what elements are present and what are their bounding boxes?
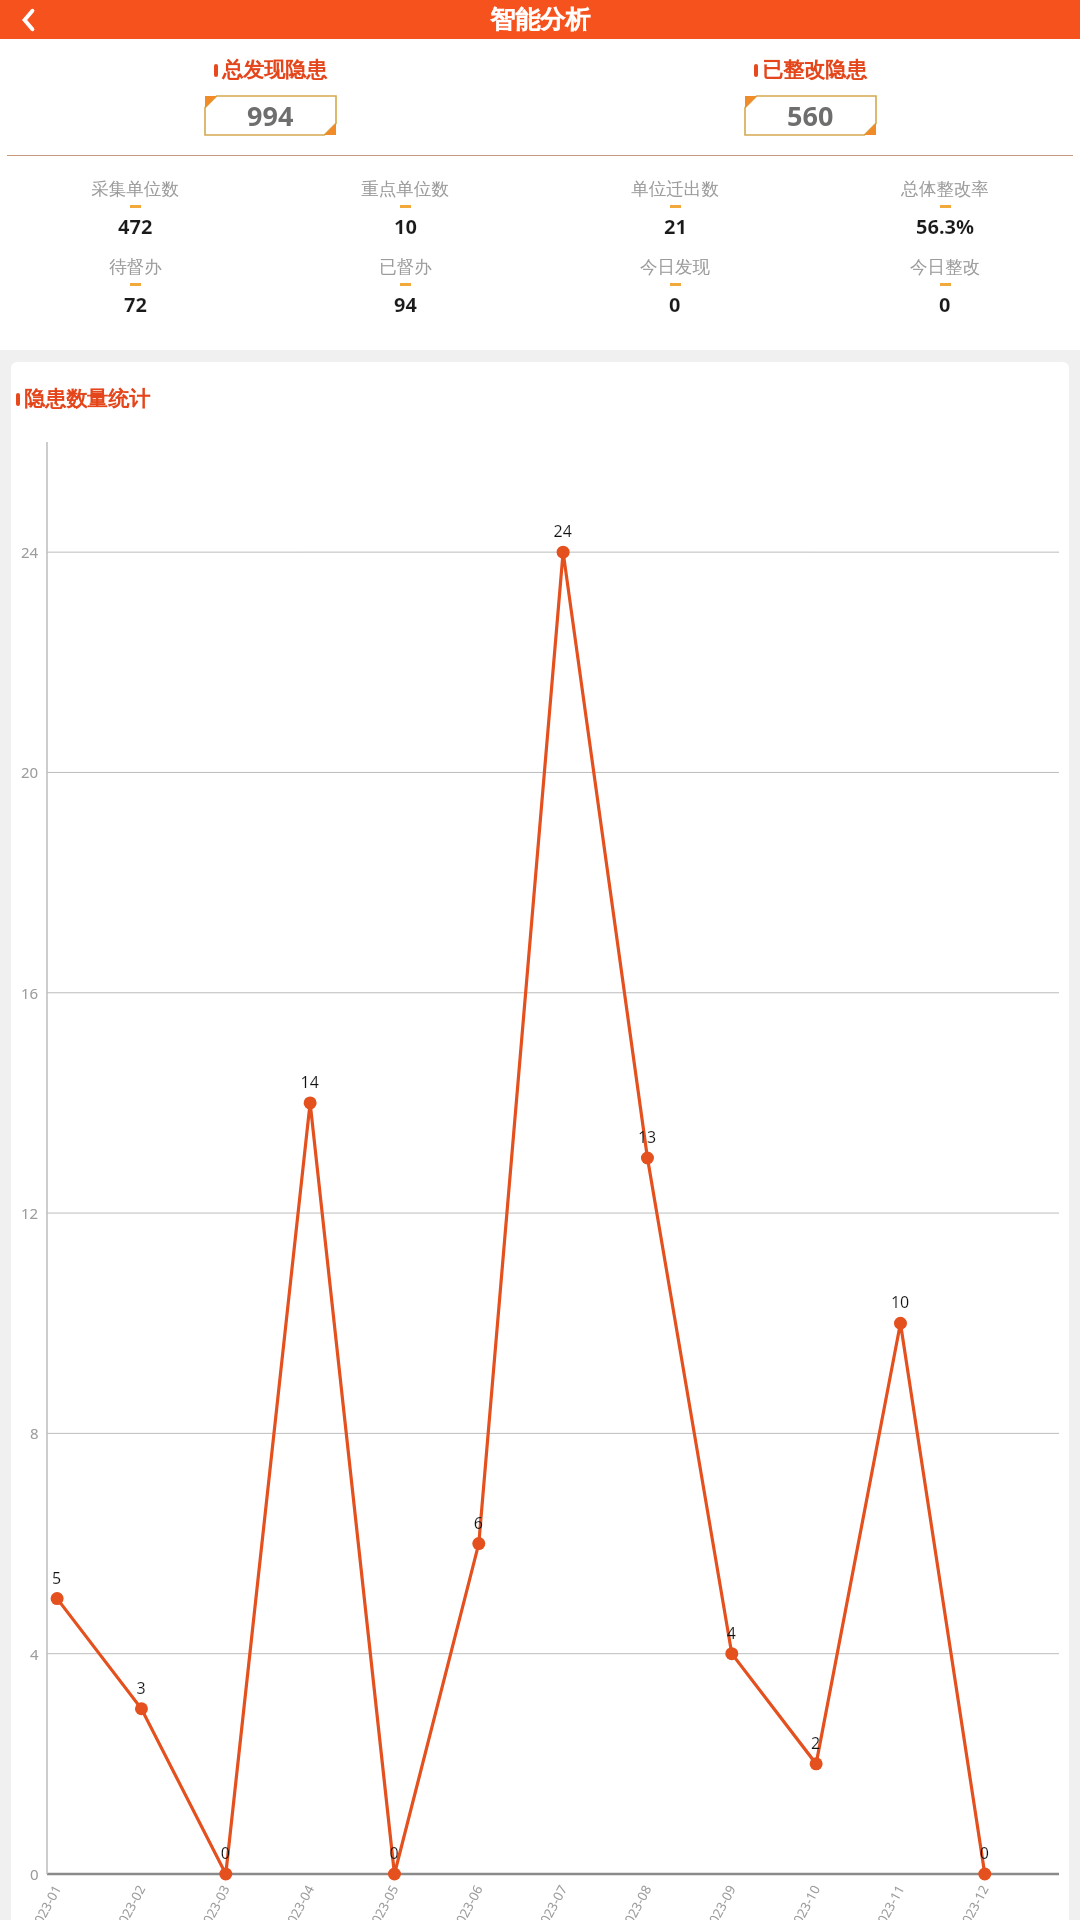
staticText: 总发现隐患 — [222, 57, 327, 83]
staticText: 已督办 — [379, 256, 432, 278]
staticText: 56.3% — [916, 213, 974, 240]
button[interactable]: 今日发现 — [540, 256, 810, 318]
staticText: 隐患数量统计 — [24, 386, 150, 412]
staticText: 单位迁出数 — [631, 178, 719, 200]
staticText: 今日整改 — [910, 256, 980, 278]
staticText: 0 — [939, 291, 951, 318]
staticText: 0 — [669, 291, 681, 318]
button[interactable]: 已督办 — [270, 256, 540, 318]
button[interactable]: 今日整改 — [810, 256, 1080, 318]
staticText: 总体整改率 — [901, 178, 989, 200]
button[interactable]: 单位迁出数 — [540, 178, 810, 240]
staticText: 21 — [664, 213, 687, 240]
button[interactable]: 总体整改率 — [810, 178, 1080, 240]
staticText: 智能分析 — [490, 4, 590, 35]
staticText: 94 — [394, 291, 417, 318]
staticText: 重点单位数 — [361, 178, 449, 200]
staticText: 472 — [118, 213, 153, 240]
staticText: 今日发现 — [640, 256, 710, 278]
button[interactable]: 已整改隐患 — [540, 57, 1080, 135]
staticText: 72 — [124, 291, 147, 318]
button[interactable]: 重点单位数 — [270, 178, 540, 240]
button[interactable]: 总发现隐患 — [0, 57, 540, 135]
button[interactable]: 待督办 — [0, 256, 270, 318]
staticText: 已整改隐患 — [762, 57, 867, 83]
button[interactable]: 采集单位数 — [0, 178, 270, 240]
staticText: 采集单位数 — [91, 178, 179, 200]
button[interactable]: Back — [10, 3, 44, 37]
staticText: 560 — [787, 97, 834, 134]
staticText: 994 — [247, 97, 294, 134]
staticText: 待督办 — [109, 256, 162, 278]
staticText: 10 — [394, 213, 417, 240]
